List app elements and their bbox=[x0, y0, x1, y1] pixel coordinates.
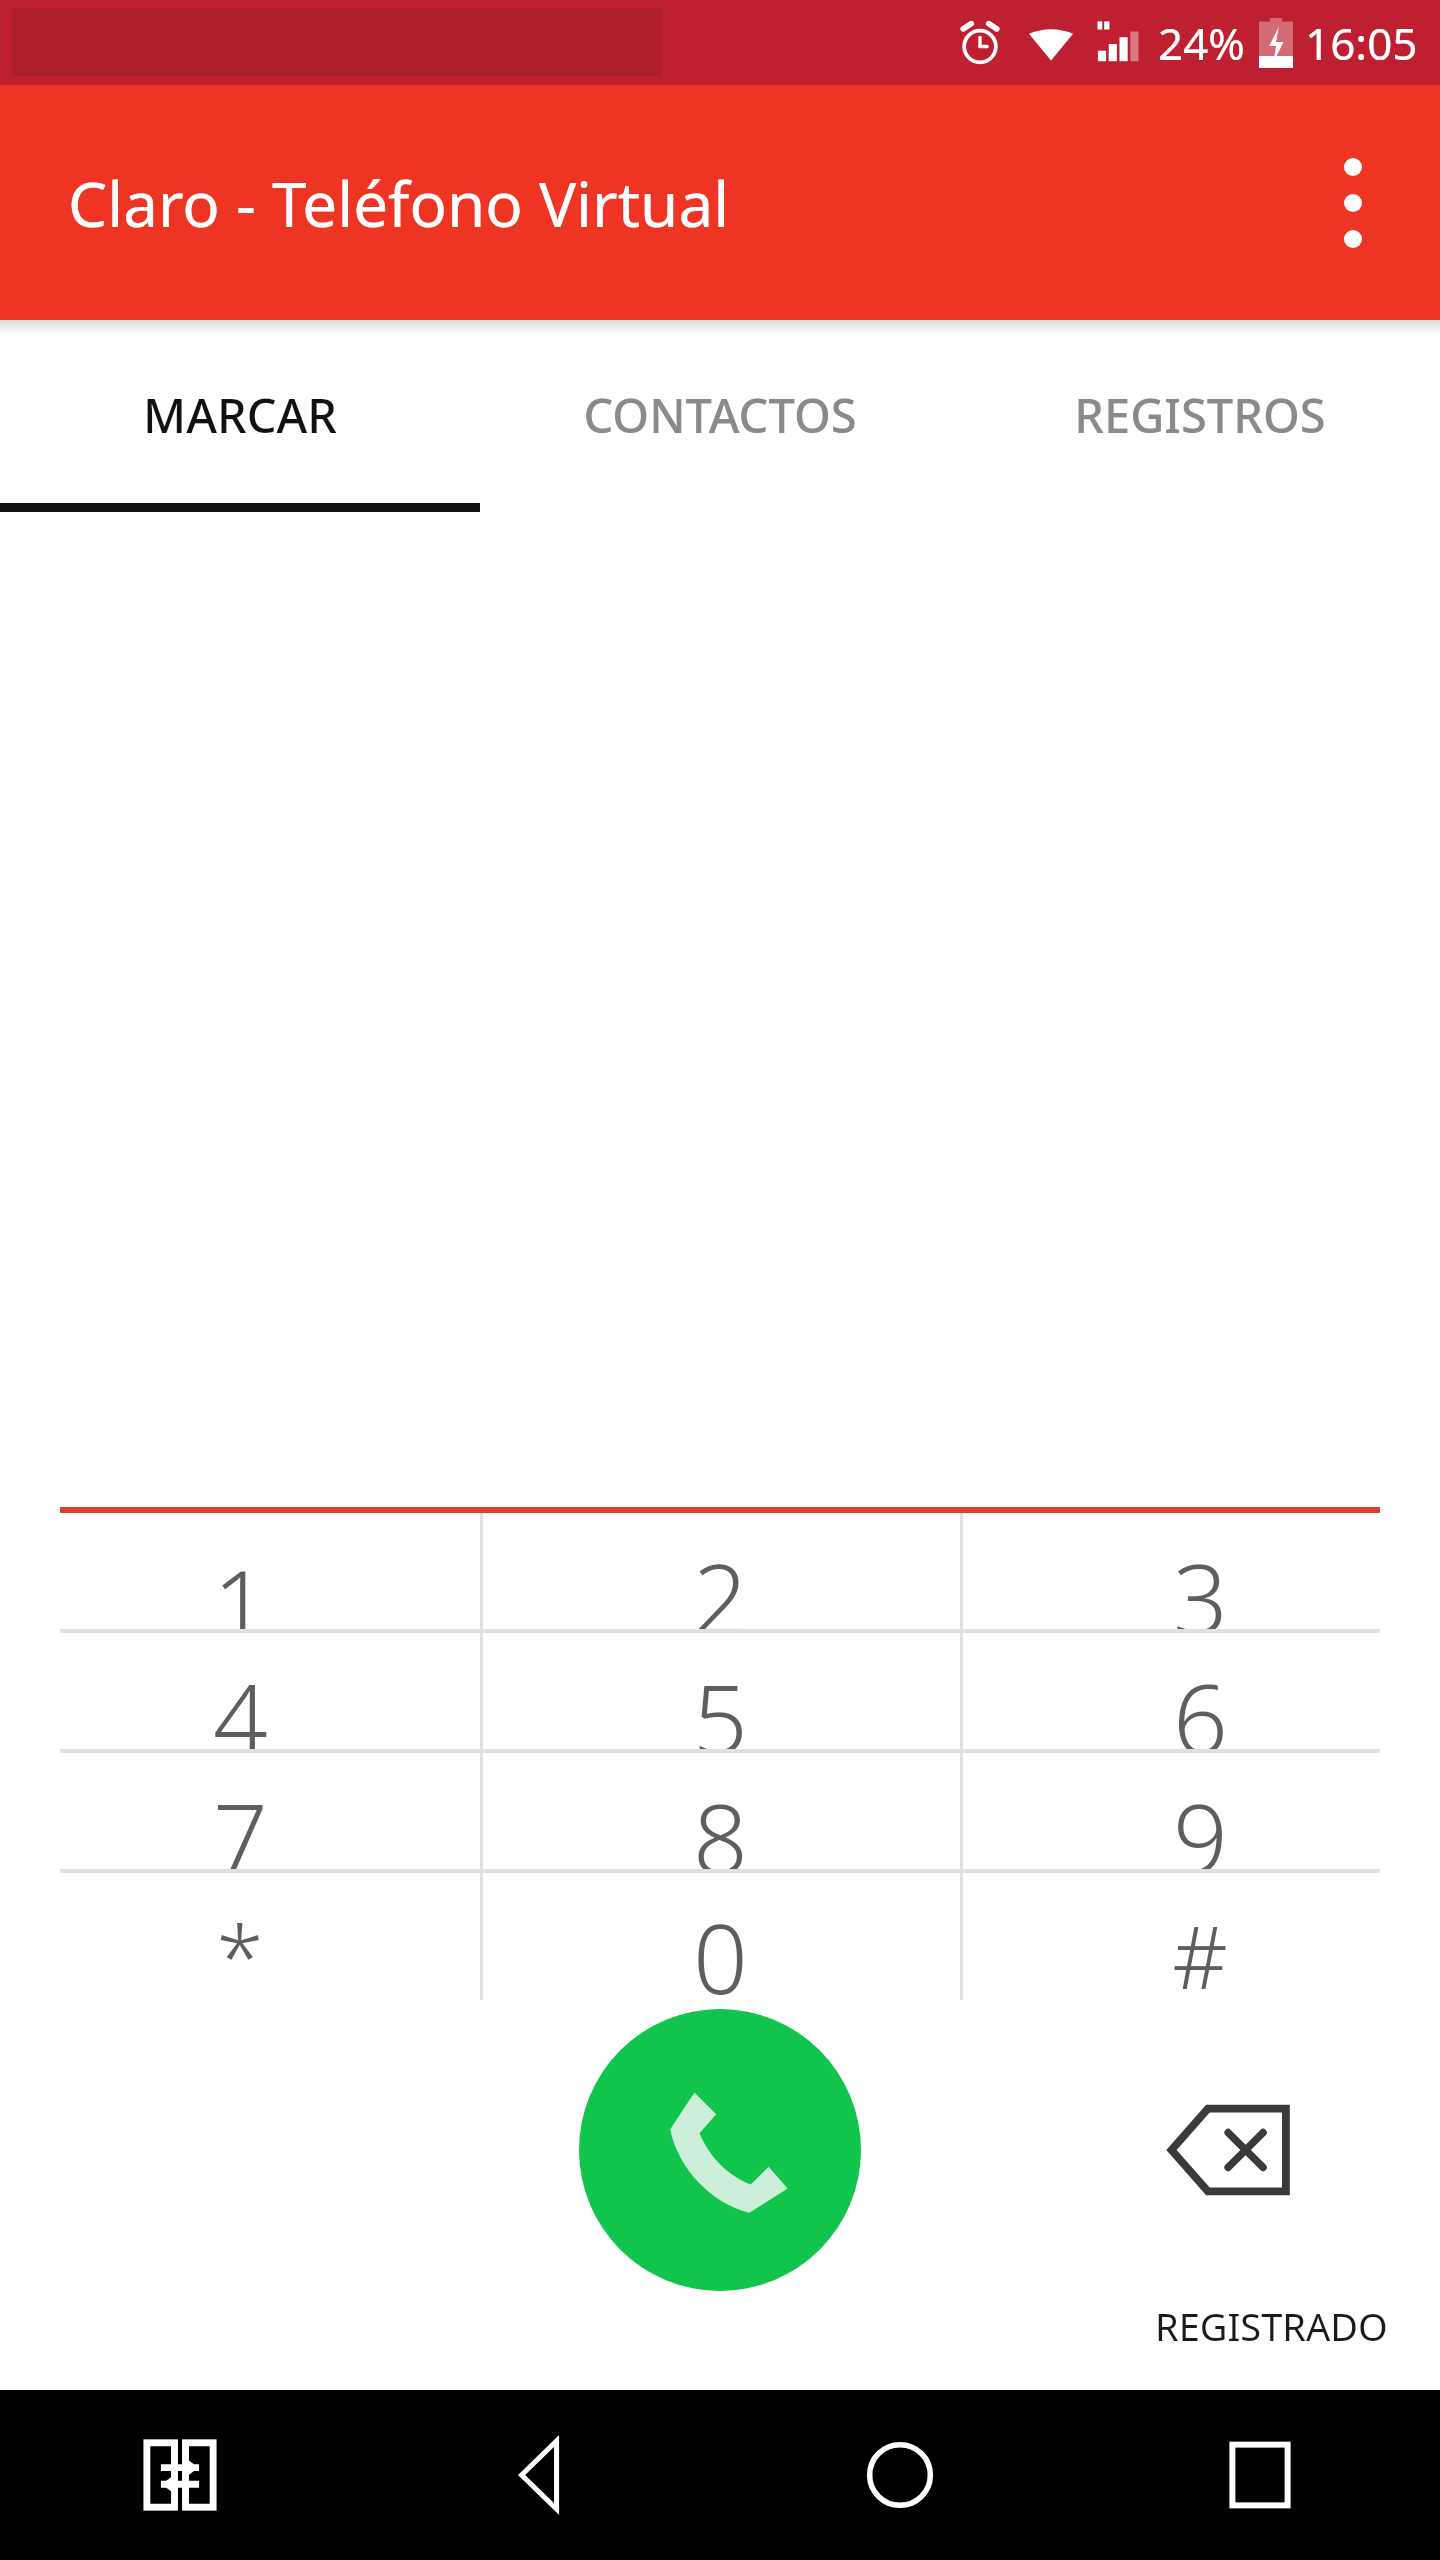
staticText: 5 bbox=[693, 1651, 748, 1753]
staticText: 0 bbox=[693, 1891, 748, 2000]
staticText: 3 bbox=[1173, 1531, 1228, 1633]
staticText: 9 bbox=[1173, 1771, 1228, 1873]
staticText: 1 bbox=[213, 1537, 268, 1633]
staticText: 16:05 bbox=[1305, 13, 1418, 73]
button[interactable]: 8 bbox=[480, 1753, 960, 1873]
staticText: CONTACTOS bbox=[583, 383, 857, 447]
button[interactable]: # bbox=[960, 1873, 1440, 2000]
button[interactable]: 3 bbox=[960, 1513, 1440, 1633]
button[interactable]: More options bbox=[1298, 148, 1408, 258]
button[interactable]: REGISTROS bbox=[960, 320, 1440, 510]
staticText: 6 bbox=[1173, 1651, 1228, 1753]
button[interactable]: MARCAR bbox=[0, 320, 480, 510]
staticText: 24% bbox=[1158, 13, 1245, 73]
button[interactable]: Backspace bbox=[1155, 2075, 1305, 2225]
staticText: * bbox=[216, 1897, 264, 2000]
staticText: 7 bbox=[213, 1771, 268, 1873]
staticText: # bbox=[1172, 1897, 1228, 2000]
staticText: REGISTRADO bbox=[1155, 2300, 1388, 2352]
button[interactable]: 0 bbox=[480, 1873, 960, 2000]
button[interactable]: Recents bbox=[1080, 2390, 1440, 2560]
button[interactable]: Back bbox=[360, 2390, 720, 2560]
staticText: Claro - Teléfono Virtual bbox=[68, 161, 730, 245]
staticText: 2 bbox=[693, 1531, 748, 1633]
button[interactable]: 9 bbox=[960, 1753, 1440, 1873]
button[interactable]: 6 bbox=[960, 1633, 1440, 1753]
staticText: MARCAR bbox=[143, 383, 337, 447]
staticText: 4 bbox=[213, 1651, 268, 1753]
staticText: 8 bbox=[693, 1771, 748, 1873]
button[interactable]: CONTACTOS bbox=[480, 320, 960, 510]
button[interactable]: 1 bbox=[0, 1513, 480, 1633]
button[interactable]: Switch app bbox=[0, 2390, 360, 2560]
button[interactable]: * bbox=[0, 1873, 480, 2000]
button[interactable]: Home bbox=[720, 2390, 1080, 2560]
button[interactable]: 7 bbox=[0, 1753, 480, 1873]
button[interactable]: 5 bbox=[480, 1633, 960, 1753]
button[interactable]: 2 bbox=[480, 1513, 960, 1633]
button[interactable]: Call bbox=[579, 2009, 861, 2291]
staticText: REGISTROS bbox=[1074, 383, 1326, 447]
button[interactable]: 4 bbox=[0, 1633, 480, 1753]
